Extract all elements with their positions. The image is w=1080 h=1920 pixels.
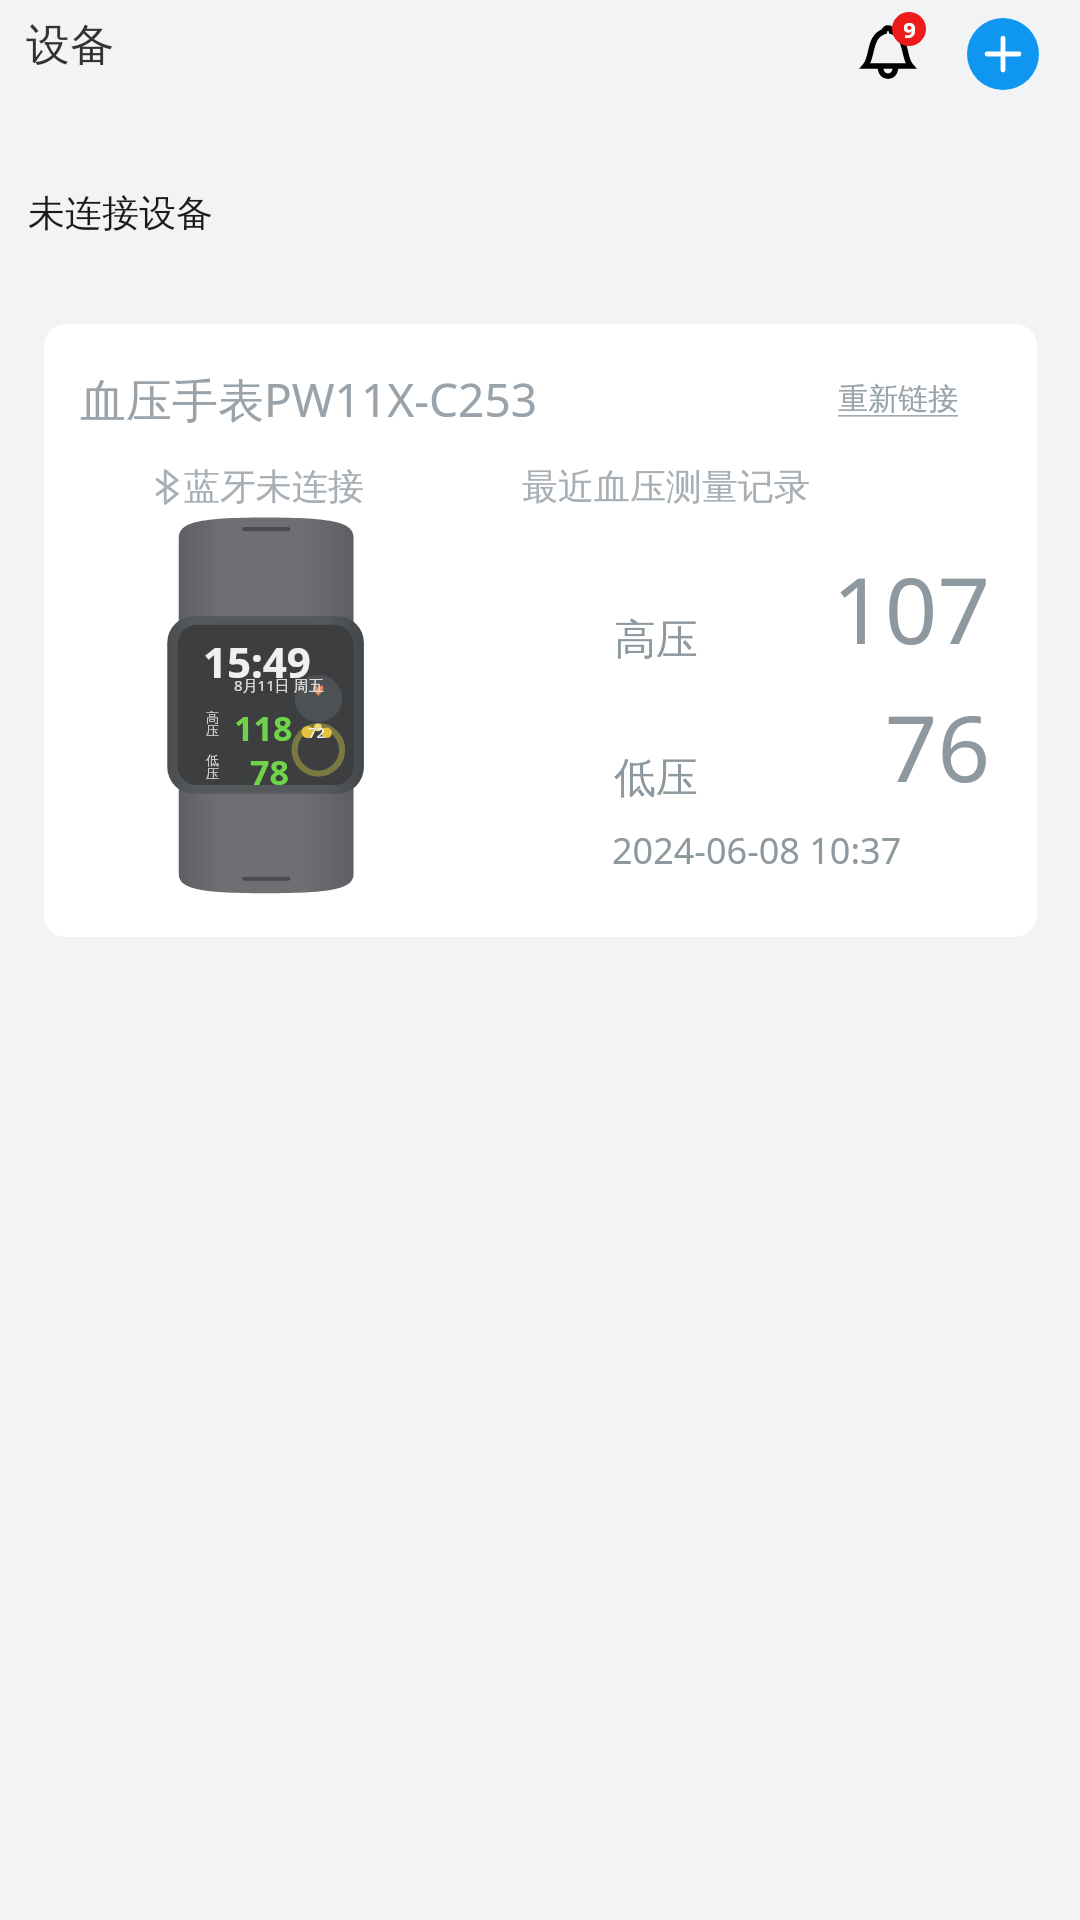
- staticText: 9: [903, 14, 916, 44]
- staticText: 2024-06-08 10:37: [612, 826, 902, 875]
- button[interactable]: Add device: [967, 18, 1039, 90]
- staticText: 高 压: [206, 709, 219, 739]
- staticText: 低压: [614, 752, 698, 805]
- staticText: 76: [794, 684, 990, 809]
- staticText: 蓝牙未连接: [184, 464, 364, 509]
- staticText: 最近血压测量记录: [522, 464, 810, 509]
- staticText: 8月11日 周五: [234, 675, 324, 695]
- staticText: 高压: [614, 614, 698, 667]
- staticText: 78: [250, 749, 289, 795]
- staticText: 重新链接: [838, 380, 958, 418]
- staticText: 设备: [26, 18, 114, 73]
- staticText: 107: [794, 546, 990, 671]
- staticText: 低 压: [206, 752, 219, 782]
- button[interactable]: 血压手表PW11X-C253: [44, 324, 1037, 937]
- button[interactable]: Notifications, 9 unread: [855, 12, 933, 90]
- staticText: 未连接设备: [28, 190, 213, 237]
- staticText: 118: [234, 705, 293, 751]
- button[interactable]: 重新链接: [838, 380, 958, 418]
- staticText: 15:49: [203, 633, 311, 690]
- staticText: 血压手表PW11X-C253: [80, 368, 538, 431]
- staticText: 72: [308, 722, 326, 742]
